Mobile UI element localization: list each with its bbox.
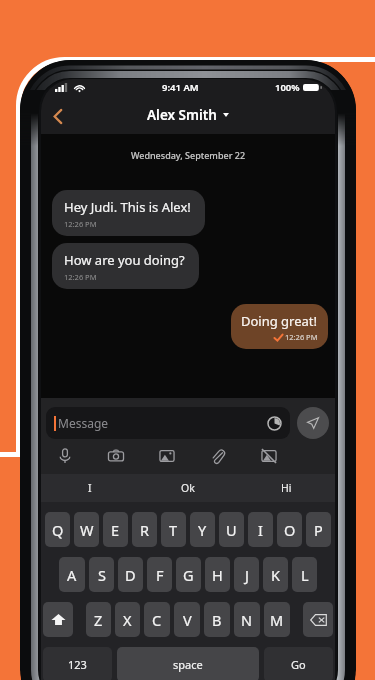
staticText: T	[169, 520, 178, 540]
staticText: S	[98, 565, 106, 585]
button[interactable]: Voice message	[52, 443, 78, 469]
button[interactable]: V	[174, 602, 200, 637]
button[interactable]: S	[89, 557, 114, 592]
button[interactable]: Camera	[103, 443, 129, 469]
staticText: Hey Judi. This is Alex!	[64, 198, 191, 216]
staticText: L	[301, 565, 309, 585]
button[interactable]: Backspace	[303, 602, 333, 637]
staticText: 12:26 PM	[285, 332, 318, 342]
button[interactable]: How are you doing?	[52, 243, 199, 289]
button[interactable]: Hey Judi. This is Alex!	[52, 190, 205, 236]
button[interactable]: K	[263, 557, 288, 592]
staticText: Ok	[181, 481, 195, 495]
staticText: Z	[94, 610, 103, 630]
staticText: G	[183, 565, 194, 585]
button[interactable]: Back	[43, 102, 71, 130]
button[interactable]: I	[41, 474, 139, 502]
staticText: I	[88, 481, 92, 495]
button[interactable]: M	[264, 602, 290, 637]
staticText: Go	[291, 657, 306, 672]
button[interactable]: E	[103, 512, 128, 547]
staticText: J	[245, 565, 249, 585]
button[interactable]: N	[234, 602, 260, 637]
button[interactable]: Z	[86, 602, 111, 637]
button[interactable]: Y	[190, 512, 215, 547]
button[interactable]: G	[176, 557, 201, 592]
staticText: How are you doing?	[64, 251, 185, 269]
button[interactable]: Ok	[139, 474, 237, 502]
staticText: 100%	[275, 81, 300, 94]
staticText: Hi	[281, 481, 292, 495]
button[interactable]: Attach file	[205, 443, 231, 469]
button[interactable]: U	[219, 512, 244, 547]
staticText: D	[125, 565, 136, 585]
staticText: Alex Smith	[147, 106, 217, 124]
button[interactable]: R	[132, 512, 157, 547]
staticText: 9:41 AM	[162, 81, 199, 94]
staticText: F	[156, 565, 164, 585]
button[interactable]: O	[277, 512, 302, 547]
staticText: 123	[68, 657, 87, 672]
staticText: Q	[52, 520, 64, 540]
staticText: I	[258, 520, 263, 540]
button[interactable]: Go	[264, 647, 333, 680]
button[interactable]: Hi	[237, 474, 335, 502]
button[interactable]: B	[204, 602, 230, 637]
staticText: Doing great!	[241, 312, 318, 330]
button[interactable]: C	[144, 602, 170, 637]
staticText: R	[140, 520, 150, 540]
staticText: K	[271, 565, 280, 585]
staticText: 12:26 PM	[64, 272, 97, 282]
staticText: Wednesday, September 22	[41, 149, 335, 161]
staticText: W	[80, 520, 94, 540]
button[interactable]: space	[117, 647, 259, 680]
staticText: Message	[58, 415, 109, 431]
staticText: space	[173, 657, 203, 672]
button[interactable]: H	[205, 557, 230, 592]
button[interactable]: I	[248, 512, 273, 547]
staticText: H	[212, 565, 223, 585]
button[interactable]: Shift	[43, 602, 73, 637]
staticText: E	[111, 520, 120, 540]
staticText: P	[314, 520, 323, 540]
staticText: V	[183, 610, 192, 630]
staticText: N	[241, 610, 253, 630]
button[interactable]: W	[74, 512, 99, 547]
staticText: M	[270, 610, 284, 630]
button[interactable]: D	[118, 557, 143, 592]
button[interactable]: T	[161, 512, 186, 547]
staticText: U	[226, 520, 237, 540]
button[interactable]: Alex Smith	[141, 102, 235, 128]
button[interactable]: A	[59, 557, 85, 592]
staticText: A	[67, 565, 77, 585]
button[interactable]: Disable media	[256, 443, 282, 469]
button[interactable]: L	[292, 557, 317, 592]
button[interactable]: Q	[45, 512, 70, 547]
button[interactable]: Message	[46, 407, 290, 439]
button[interactable]: J	[234, 557, 259, 592]
staticText: O	[284, 520, 296, 540]
button[interactable]: Doing great!	[231, 304, 328, 349]
button[interactable]: Gallery	[154, 443, 180, 469]
staticText: C	[152, 610, 162, 630]
staticText: B	[212, 610, 222, 630]
button[interactable]: Send	[297, 407, 329, 439]
staticText: Y	[198, 520, 207, 540]
button[interactable]: F	[147, 557, 172, 592]
button[interactable]: P	[306, 512, 331, 547]
staticText: 12:26 PM	[64, 219, 97, 229]
staticText: X	[123, 610, 132, 630]
button[interactable]: X	[115, 602, 140, 637]
button[interactable]: 123	[43, 647, 112, 680]
